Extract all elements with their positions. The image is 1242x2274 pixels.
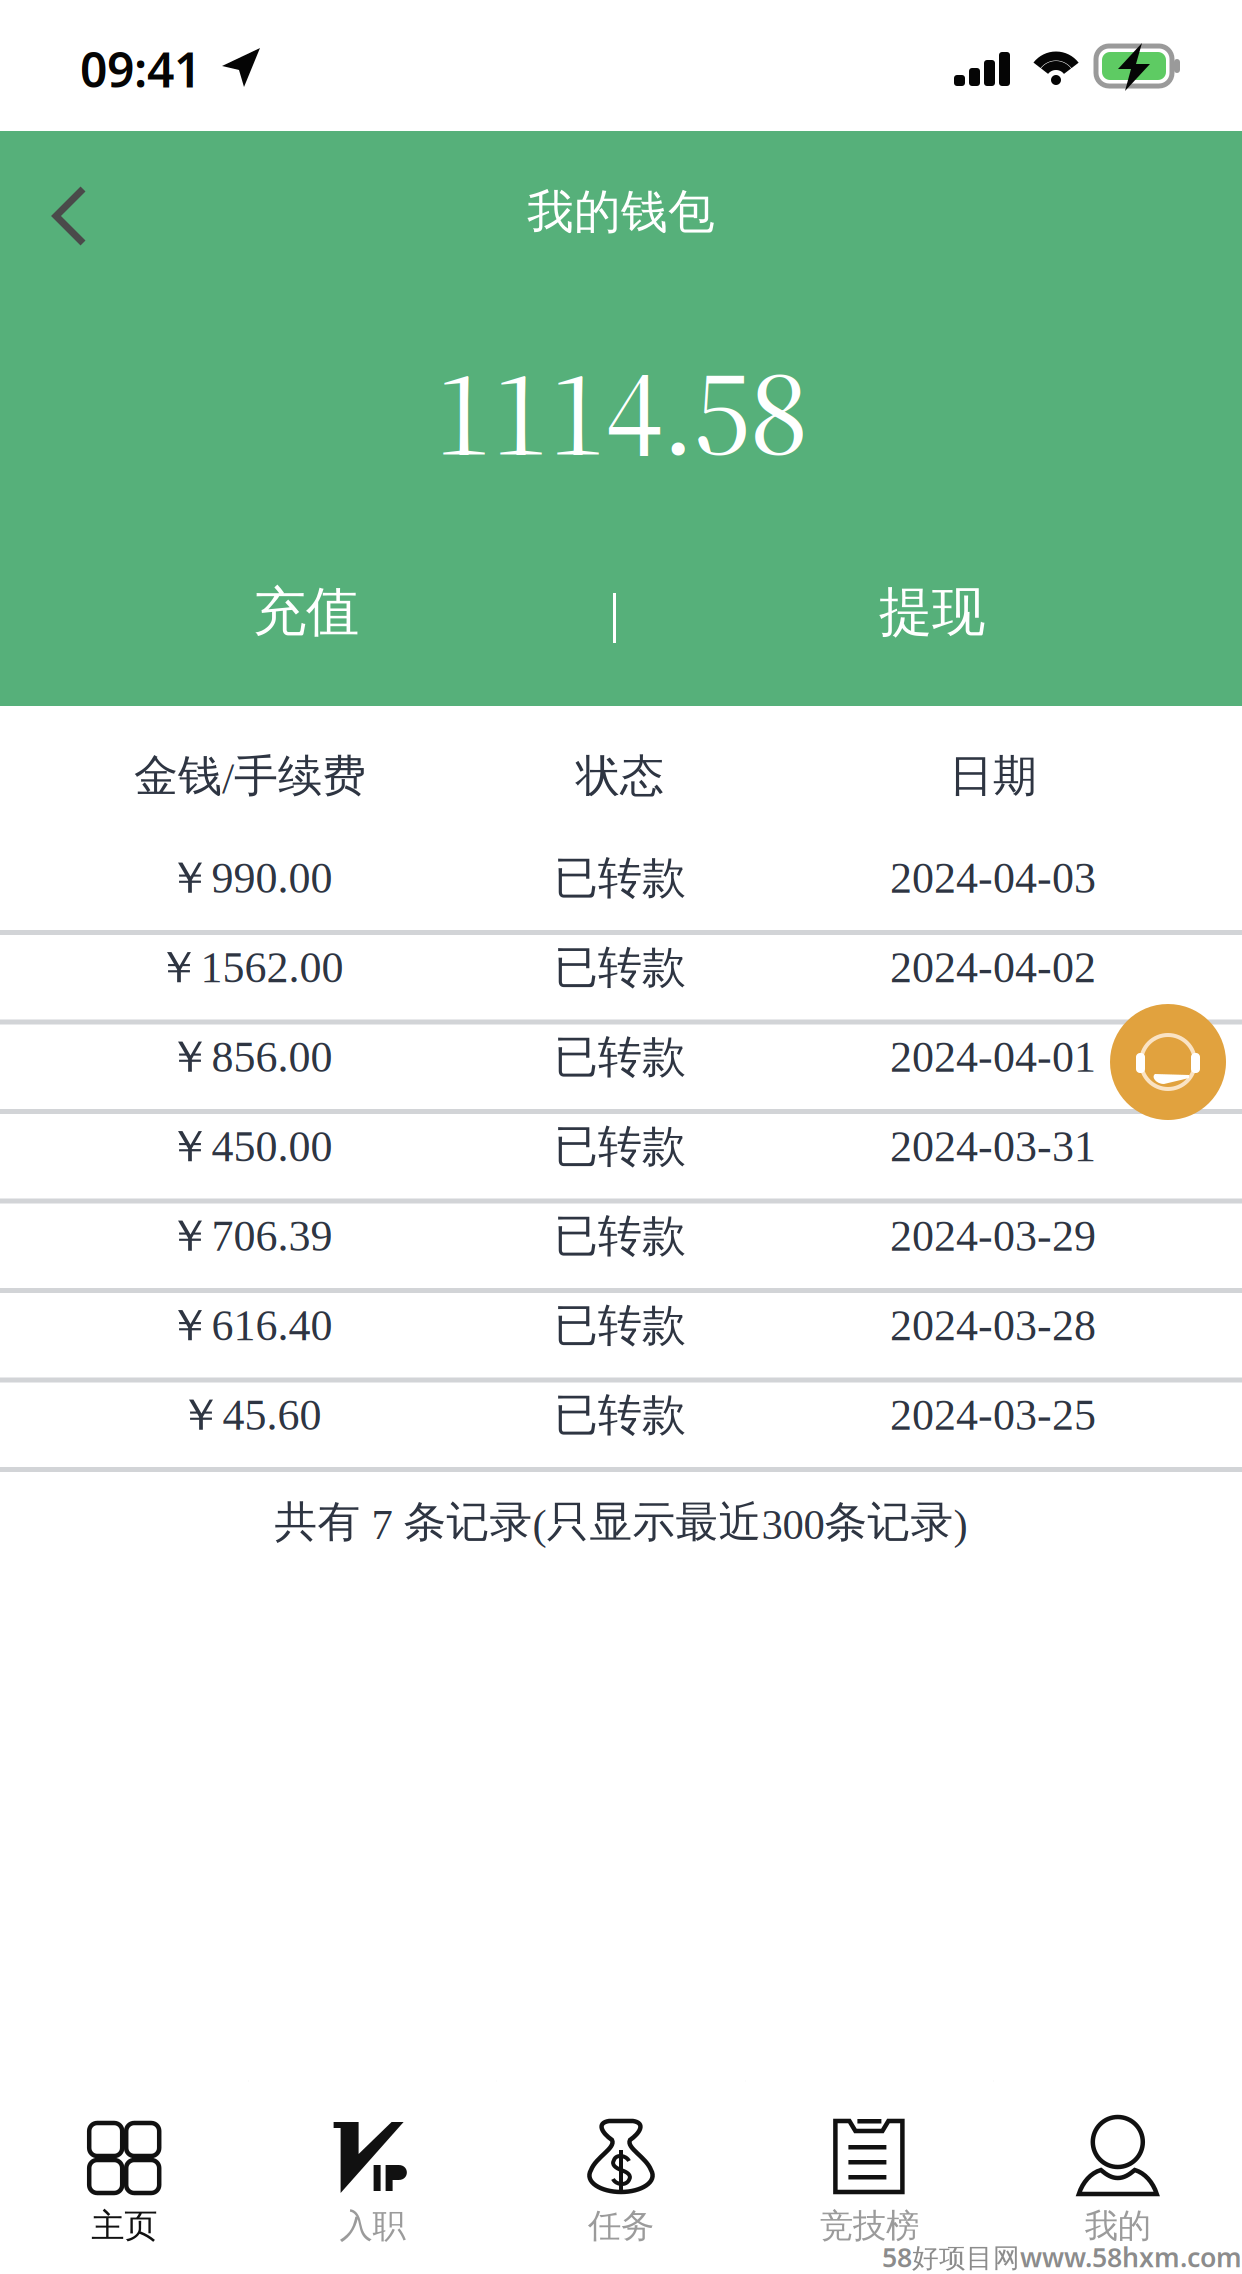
staticText: 竞技榜 (820, 2205, 919, 2246)
staticText: 日期 (949, 748, 1037, 804)
staticText: 主页 (91, 2205, 157, 2246)
staticText: ￥45.60 (178, 1387, 321, 1443)
staticText: 1114.58 (434, 329, 807, 495)
staticText: 2024-04-03 (890, 854, 1096, 902)
staticText: 2024-04-02 (890, 943, 1096, 992)
staticText: 我的钱包 (527, 183, 715, 241)
staticText: 已转款 (554, 1298, 686, 1353)
button[interactable]: 我的 (994, 2080, 1242, 2274)
staticText: ￥706.39 (167, 1208, 332, 1264)
staticText: 已转款 (554, 850, 686, 906)
staticText: 金钱/手续费 (134, 748, 366, 804)
button[interactable]: Back (0, 160, 120, 264)
staticText: 已转款 (554, 1387, 686, 1443)
staticText: 充值 (253, 579, 359, 645)
staticText: 我的 (1085, 2205, 1151, 2246)
staticText: 2024-03-28 (890, 1301, 1096, 1350)
staticText: ￥856.00 (167, 1029, 332, 1085)
staticText: 已转款 (554, 1119, 686, 1174)
staticText: 状态 (576, 748, 664, 804)
staticText: 2024-03-25 (890, 1391, 1096, 1439)
staticText: ￥1562.00 (156, 940, 343, 995)
staticText: 2024-04-01 (890, 1033, 1096, 1081)
staticText: 09:41 (80, 36, 201, 102)
staticText: ￥990.00 (167, 850, 332, 906)
staticText: 2024-03-29 (890, 1212, 1096, 1260)
staticText: 已转款 (554, 1208, 686, 1264)
staticText: 共有 7 条记录(只显示最近300条记录) (274, 1495, 967, 1549)
button[interactable]: 充值 (146, 578, 466, 646)
staticText: ￥450.00 (167, 1119, 332, 1174)
button[interactable]: 任务 (497, 2080, 745, 2274)
button[interactable]: 入职 (248, 2080, 497, 2274)
button[interactable]: 竞技榜 (745, 2080, 994, 2274)
button[interactable]: 客服 (1110, 1004, 1226, 1120)
button[interactable]: 提现 (772, 578, 1092, 646)
staticText: 提现 (879, 579, 985, 645)
staticText: 已转款 (554, 940, 686, 995)
staticText: 任务 (588, 2205, 654, 2246)
staticText: 已转款 (554, 1029, 686, 1085)
staticText: 58好项目网www.58hxm.com (882, 2239, 1242, 2274)
staticText: ￥616.40 (167, 1298, 332, 1353)
staticText: 入职 (340, 2205, 406, 2246)
button[interactable]: 主页 (0, 2080, 248, 2274)
staticText: 2024-03-31 (890, 1122, 1096, 1171)
